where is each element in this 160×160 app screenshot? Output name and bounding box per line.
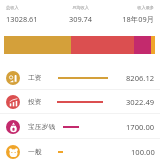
staticText: 1700.00 — [126, 122, 155, 132]
staticText: 13028.61 — [6, 14, 56, 24]
staticText: 工资 — [28, 73, 42, 82]
staticText: 月均收入 — [56, 5, 105, 10]
staticText: 8206.12 — [126, 73, 155, 83]
button[interactable]: 宝压岁钱 — [0, 114, 160, 139]
staticText: 总收入 — [6, 5, 56, 10]
button[interactable]: 工资 — [0, 65, 160, 90]
staticText: 一般 — [28, 147, 42, 156]
button[interactable]: 一般 — [0, 139, 160, 160]
staticText: 309.74 — [56, 14, 105, 24]
staticText: 投资 — [28, 97, 42, 106]
staticText: 18年09月 — [105, 14, 154, 24]
staticText: 3022.49 — [126, 97, 155, 107]
staticText: 收入最多 — [105, 5, 154, 10]
staticText: 宝压岁钱 — [28, 122, 56, 131]
staticText: 100.00 — [131, 147, 155, 157]
button[interactable]: 投资 — [0, 89, 160, 114]
